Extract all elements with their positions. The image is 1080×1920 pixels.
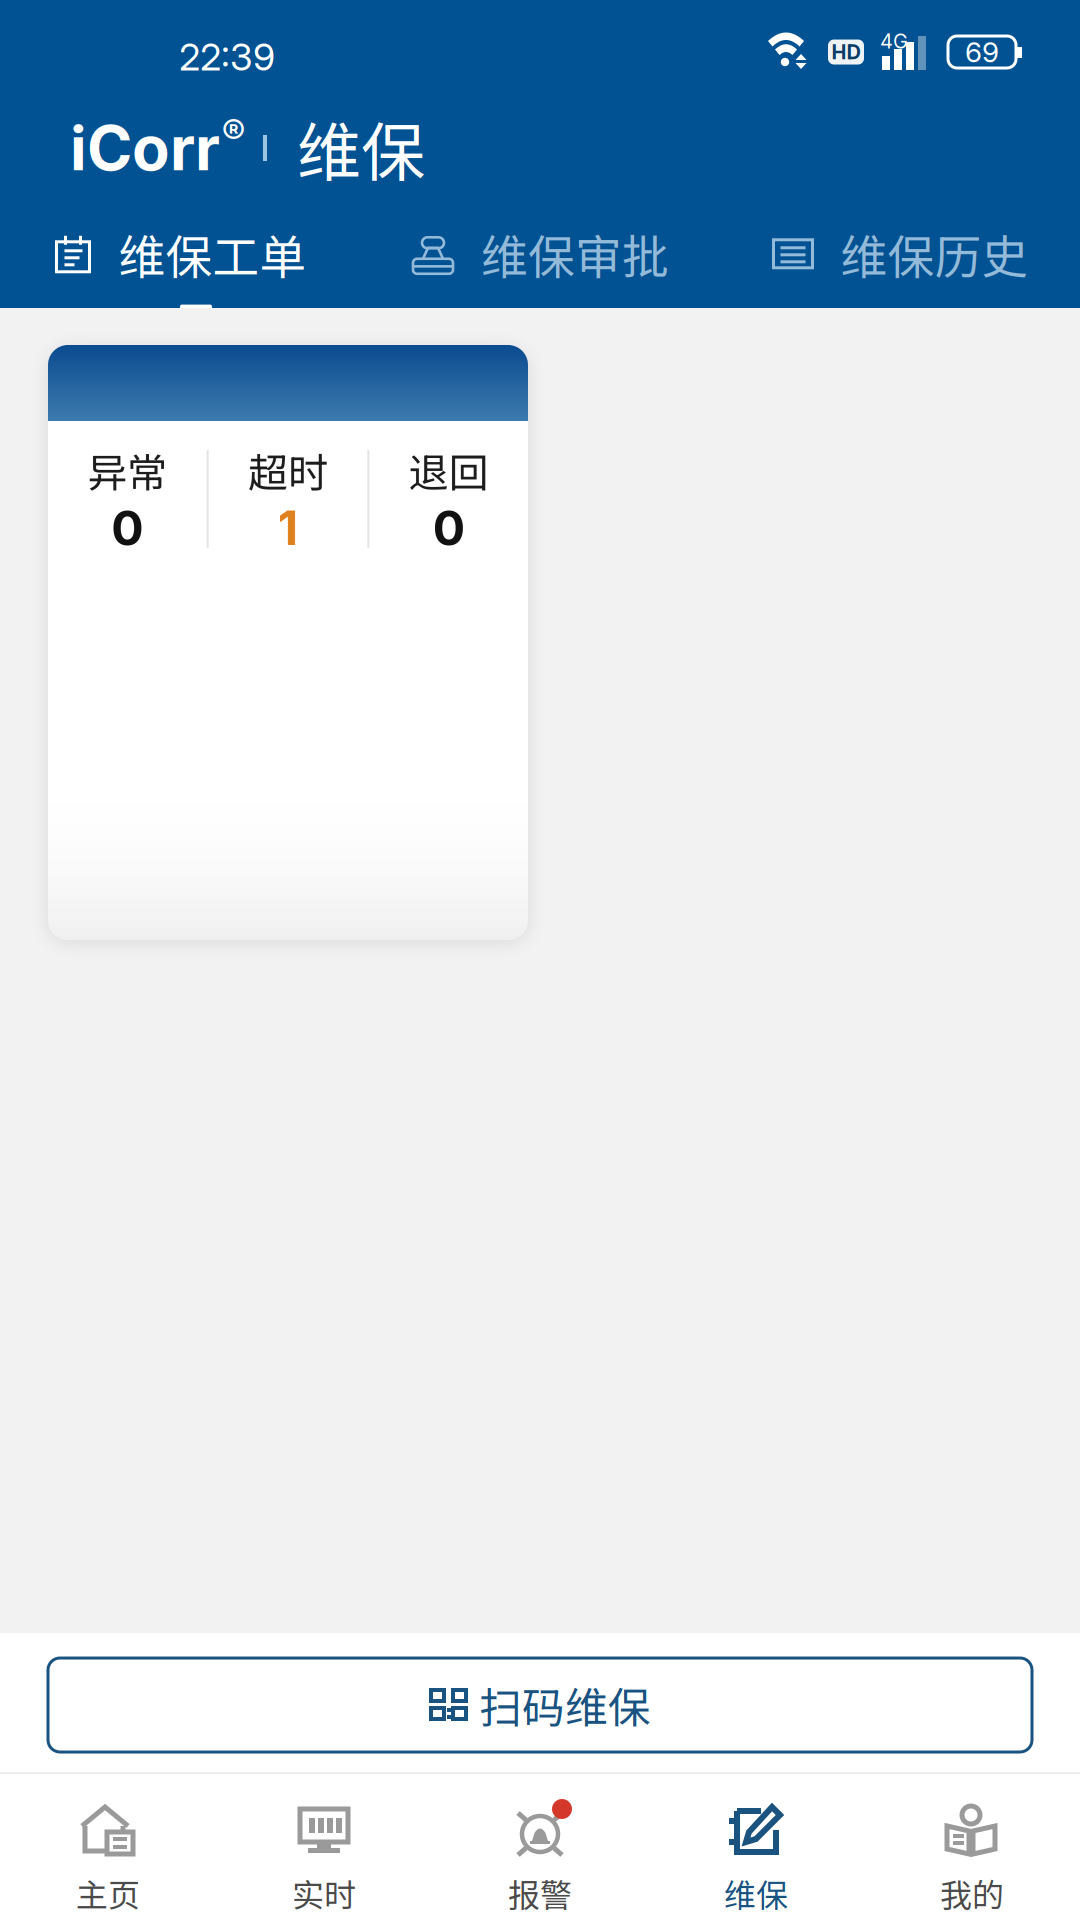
staticText: 异常 <box>87 441 167 499</box>
button[interactable]: 报警 <box>432 1774 648 1920</box>
staticText: 22:39 <box>179 34 275 80</box>
button[interactable]: 维保 <box>648 1774 864 1920</box>
staticText: 退回 <box>409 441 489 499</box>
staticText: 维保工单 <box>118 220 306 288</box>
button[interactable]: 维保工单 <box>0 200 360 308</box>
button[interactable]: 主页 <box>0 1774 216 1920</box>
staticText: ® <box>222 110 245 154</box>
staticText: 维保历史 <box>840 220 1028 288</box>
staticText: 主页 <box>76 1870 140 1916</box>
button[interactable]: 我的 <box>864 1774 1080 1920</box>
staticText: 0 <box>433 499 465 557</box>
button[interactable]: 扫码维保 <box>48 1658 1032 1752</box>
staticText: 维保 <box>724 1870 788 1916</box>
staticText: 0 <box>111 499 143 557</box>
button[interactable]: 维保审批 <box>360 200 720 308</box>
staticText: 我的 <box>940 1870 1004 1916</box>
staticText: 超时 <box>248 441 328 499</box>
staticText: 实时 <box>292 1870 356 1916</box>
button[interactable]: 维保历史 <box>720 200 1080 308</box>
staticText: 维保审批 <box>481 220 669 288</box>
staticText: 1 <box>277 499 298 557</box>
staticText: iCorr <box>70 111 220 185</box>
staticText: 4G <box>880 29 908 53</box>
staticText: HD <box>831 40 860 64</box>
button[interactable]: 实时 <box>216 1774 432 1920</box>
staticText: 扫码维保 <box>479 1674 651 1736</box>
staticText: 维保 <box>297 102 425 194</box>
staticText: 69 <box>965 35 999 69</box>
staticText: 报警 <box>508 1870 572 1916</box>
